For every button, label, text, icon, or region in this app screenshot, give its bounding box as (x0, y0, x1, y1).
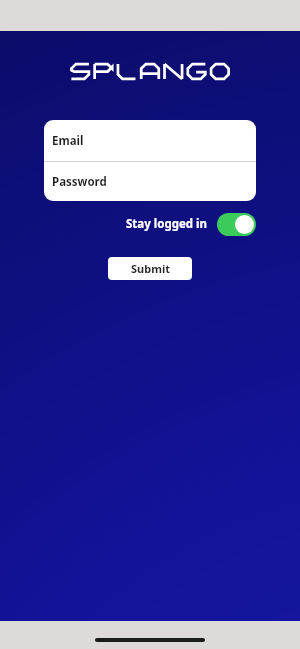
button[interactable]: Stay logged in (126, 216, 217, 232)
button[interactable]: Password (44, 162, 256, 201)
other: Splango logo (70, 58, 230, 84)
staticText: Stay logged in (126, 216, 207, 232)
staticText: Password (52, 174, 107, 190)
staticText: Submit (131, 261, 170, 276)
button[interactable]: Submit (108, 257, 192, 280)
button[interactable]: Stay logged in toggle, on (217, 213, 256, 236)
button[interactable]: Email (44, 120, 256, 161)
staticText: Email (52, 133, 84, 149)
